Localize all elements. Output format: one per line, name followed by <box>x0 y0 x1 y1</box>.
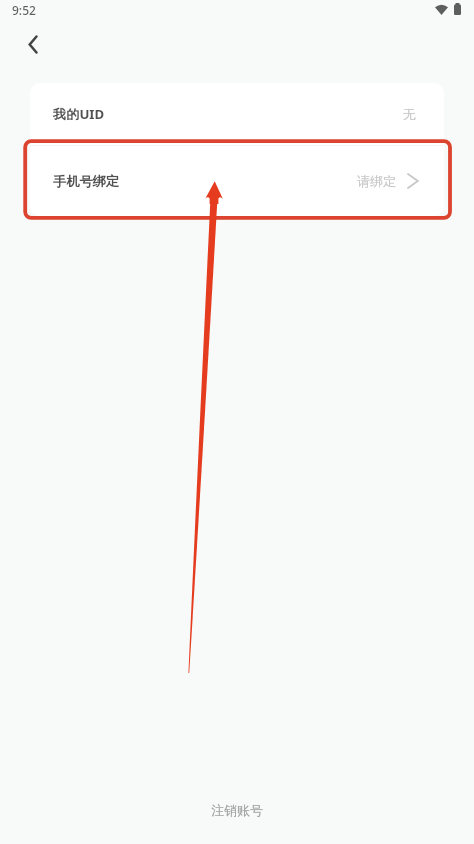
button[interactable]: 手机号绑定 <box>30 146 444 216</box>
staticText: 我的UID <box>53 105 105 123</box>
button[interactable]: 注销账号 <box>195 797 279 823</box>
button[interactable]: 我的UID <box>30 83 444 145</box>
staticText: 请绑定 <box>357 173 396 189</box>
staticText: 9:52 <box>12 2 36 18</box>
button[interactable]: Back <box>10 22 54 66</box>
staticText: 注销账号 <box>211 802 263 818</box>
staticText: 手机号绑定 <box>53 173 119 190</box>
staticText: 无 <box>403 106 416 122</box>
